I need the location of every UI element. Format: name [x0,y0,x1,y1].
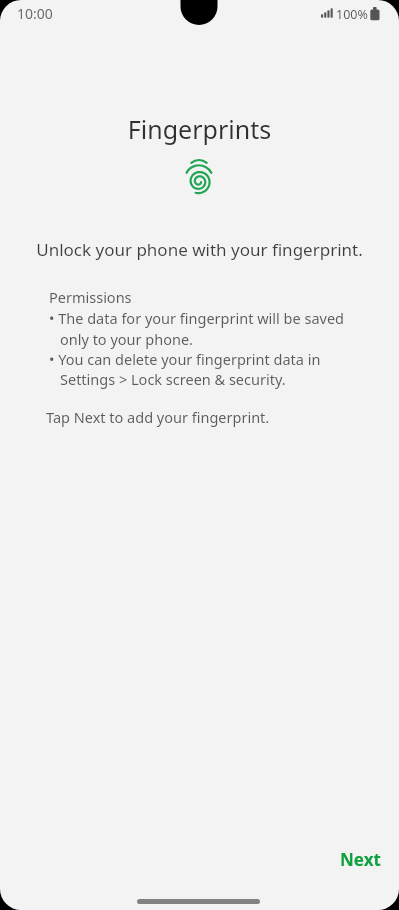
staticText: • You can delete your fingerprint data i… [49,349,321,369]
staticText: Fingerprints [0,112,399,146]
button[interactable]: Next [322,836,394,882]
staticText: Tap Next to add your fingerprint. [46,407,270,427]
staticText: Next [340,848,381,871]
staticText: only to your phone. [60,329,193,349]
staticText: 10:00 [17,4,53,23]
staticText: Unlock your phone with your fingerprint. [0,238,399,261]
staticText: Permissions [49,287,132,307]
staticText: 100% [336,6,368,23]
staticText: Settings > Lock screen & security. [60,369,286,389]
staticText: • The data for your fingerprint will be … [49,308,344,328]
